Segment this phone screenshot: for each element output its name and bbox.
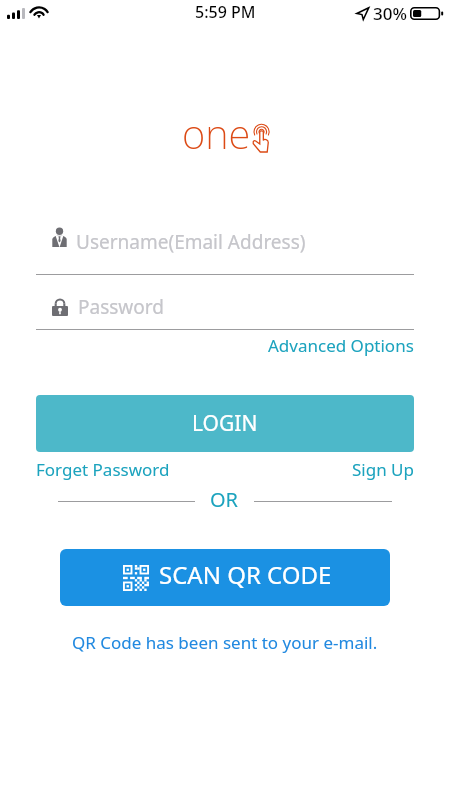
- button[interactable]: LOGIN: [36, 395, 414, 452]
- staticText: Forget Password: [36, 458, 170, 481]
- button[interactable]: Forget Password: [36, 458, 170, 481]
- button[interactable]: Password: [36, 284, 414, 329]
- staticText: QR Code has been sent to your e-mail.: [72, 631, 378, 654]
- staticText: LOGIN: [192, 409, 258, 438]
- staticText: Username(Email Address): [76, 229, 306, 255]
- button[interactable]: SCAN QR CODE: [60, 549, 390, 606]
- button[interactable]: Sign Up: [352, 458, 414, 481]
- staticText: OR: [210, 486, 239, 513]
- staticText: Sign Up: [352, 458, 414, 481]
- staticText: one: [182, 106, 251, 160]
- staticText: Password: [78, 294, 164, 320]
- staticText: SCAN QR CODE: [159, 558, 332, 591]
- staticText: Advanced Options: [268, 334, 414, 357]
- staticText: 30%: [373, 2, 407, 25]
- staticText: 5:59 PM: [195, 1, 256, 23]
- button[interactable]: Advanced Options: [256, 330, 450, 361]
- button[interactable]: Username(Email Address): [36, 222, 414, 275]
